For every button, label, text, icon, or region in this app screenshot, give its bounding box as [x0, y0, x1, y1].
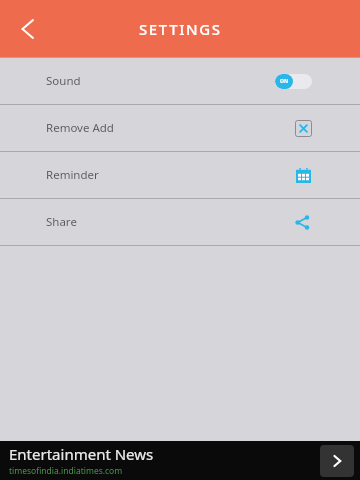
button[interactable]: Reminder: [0, 152, 360, 198]
staticText: Reminder: [46, 167, 99, 183]
staticText: ON: [280, 78, 289, 85]
staticText: timesofindia.indiatimes.com: [9, 465, 123, 477]
staticText: Sound: [46, 73, 81, 89]
button[interactable]: Sound: [0, 58, 360, 104]
button[interactable]: Share: [0, 199, 360, 245]
staticText: SETTINGS: [139, 19, 222, 39]
button[interactable]: Next ad: [320, 445, 354, 477]
button[interactable]: Entertainment News: [0, 441, 360, 480]
staticText: Entertainment News: [9, 444, 154, 464]
staticText: Share: [46, 214, 77, 230]
button[interactable]: Reminder: [294, 166, 312, 184]
staticText: Remove Add: [46, 120, 114, 136]
button[interactable]: Remove Add: [0, 105, 360, 151]
button[interactable]: Share: [292, 212, 312, 232]
button[interactable]: Remove Ads: [295, 120, 312, 137]
button[interactable]: Back: [4, 5, 52, 53]
button[interactable]: Sound on: [275, 74, 312, 89]
